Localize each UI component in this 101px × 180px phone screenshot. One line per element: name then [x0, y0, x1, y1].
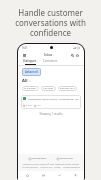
- button[interactable]: Discover First: [58, 86, 77, 91]
- button[interactable]: Profile: [68, 171, 82, 180]
- button[interactable]: Contactors: [42, 59, 59, 65]
- staticText: Wednesday Status 2025/01 Conversation 12…: [28, 97, 79, 100]
- button[interactable]: Report issue: [56, 156, 74, 161]
- staticText: All: [22, 78, 28, 84]
- staticText: Inbox: [44, 53, 53, 57]
- staticText: Give feedback: [32, 157, 47, 160]
- button[interactable]: Search: [70, 53, 75, 58]
- staticText: Report issue: [60, 157, 73, 160]
- button[interactable]: Dialogues: [22, 59, 38, 65]
- staticText: Handle customer conversations with confi…: [6, 7, 95, 38]
- button[interactable]: Advanced: [22, 68, 41, 76]
- staticText: In Progress: [24, 87, 37, 90]
- button[interactable]: Menu: [22, 53, 27, 58]
- button[interactable]: Wednesday Status 2025/01 Conversation 12…: [21, 95, 81, 109]
- staticText: 9:41: [22, 46, 28, 50]
- staticText: 2 min: [26, 104, 32, 107]
- button[interactable]: Activity: [52, 171, 66, 180]
- staticText: Showing 1 results: [18, 112, 84, 116]
- staticText: Advanced: [25, 70, 38, 74]
- button[interactable]: In Progress: [22, 86, 39, 91]
- staticText: Contactors: [43, 59, 58, 63]
- staticText: Dialogues: [23, 59, 37, 63]
- button[interactable]: Tasks: [36, 171, 50, 180]
- staticText: Not Sales: [43, 87, 54, 90]
- staticText: Discover First: [60, 87, 75, 90]
- button[interactable]: Home: [20, 171, 34, 180]
- button[interactable]: Not Sales: [41, 86, 56, 91]
- staticText: 102: [37, 104, 41, 107]
- button[interactable]: Notifications: [75, 53, 80, 58]
- button[interactable]: Give feedback: [28, 156, 48, 161]
- staticText: Mailservice Service Training © 2025 Mail…: [21, 163, 81, 169]
